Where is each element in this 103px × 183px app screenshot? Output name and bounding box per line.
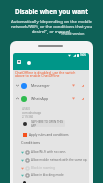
staticText: 4.58.0 bbox=[22, 107, 30, 111]
staticText: 9:06 bbox=[80, 53, 86, 57]
button[interactable]: Allow in blocking mode bbox=[21, 172, 93, 178]
staticText: Automatically (depending on the mobile n… bbox=[5, 18, 98, 34]
staticText: Disable when you want bbox=[0, 7, 103, 16]
staticText: * Phone version bbox=[40, 31, 103, 36]
staticText: Block in roaming bbox=[31, 166, 55, 170]
button[interactable]: Block in roaming bbox=[21, 165, 93, 171]
button[interactable]: TAP HERE TO OPEN THIS APP bbox=[31, 120, 65, 127]
staticText: Allow in blocking mode bbox=[31, 173, 64, 177]
staticText: Messenger bbox=[31, 83, 50, 88]
staticText: Conditions bbox=[21, 140, 41, 145]
button[interactable]: Allow mobile network with the same op. bbox=[21, 157, 93, 163]
button[interactable]: Messenger bbox=[13, 79, 89, 92]
staticText: WhatsApp bbox=[31, 96, 49, 101]
staticText: Apply rules and conditions bbox=[29, 133, 69, 137]
button[interactable]: WhatsApp bbox=[13, 92, 89, 105]
staticText: 2.19.360 bbox=[22, 115, 34, 119]
staticText: Allow Wi-Fi with no conn. bbox=[31, 150, 67, 154]
staticText: Allow mobile network with the same op. bbox=[31, 158, 88, 162]
staticText: TAP HERE TO OPEN THIS APP bbox=[31, 120, 65, 127]
button[interactable]: Allow Wi-Fi with no conn. bbox=[21, 149, 93, 155]
button[interactable]: Open app bbox=[23, 122, 27, 126]
button[interactable]: Toggle ChatOffline bbox=[27, 61, 31, 65]
staticText: com.whatsapp bbox=[22, 111, 42, 115]
button[interactable]: Apply rules and conditions bbox=[23, 133, 69, 137]
staticText: ChatOffline is disabled, use the switch … bbox=[15, 70, 83, 78]
